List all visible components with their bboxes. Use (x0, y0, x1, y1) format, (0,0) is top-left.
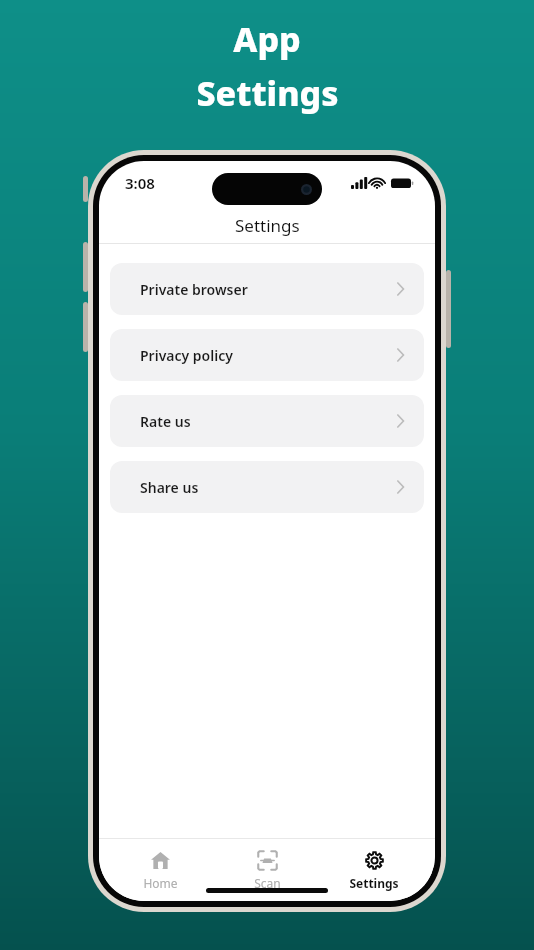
button[interactable]: Settings (328, 845, 420, 891)
button[interactable]: Rate us (110, 395, 424, 447)
button[interactable]: Privacy policy (110, 329, 424, 381)
staticText: Settings (349, 875, 399, 891)
button[interactable]: Share us (110, 461, 424, 513)
staticText: 3:08 (125, 173, 155, 193)
staticText: App (233, 16, 301, 62)
staticText: Private browser (140, 280, 397, 299)
staticText: Rate us (140, 412, 397, 431)
staticText: Scan (254, 875, 281, 891)
staticText: Settings (235, 214, 300, 237)
button[interactable]: Scan (221, 845, 313, 891)
button[interactable]: Private browser (110, 263, 424, 315)
staticText: Privacy policy (140, 346, 397, 365)
staticText: Settings (196, 70, 339, 116)
staticText: Home (143, 875, 178, 891)
button[interactable]: Home (114, 845, 206, 891)
staticText: Share us (140, 478, 397, 497)
